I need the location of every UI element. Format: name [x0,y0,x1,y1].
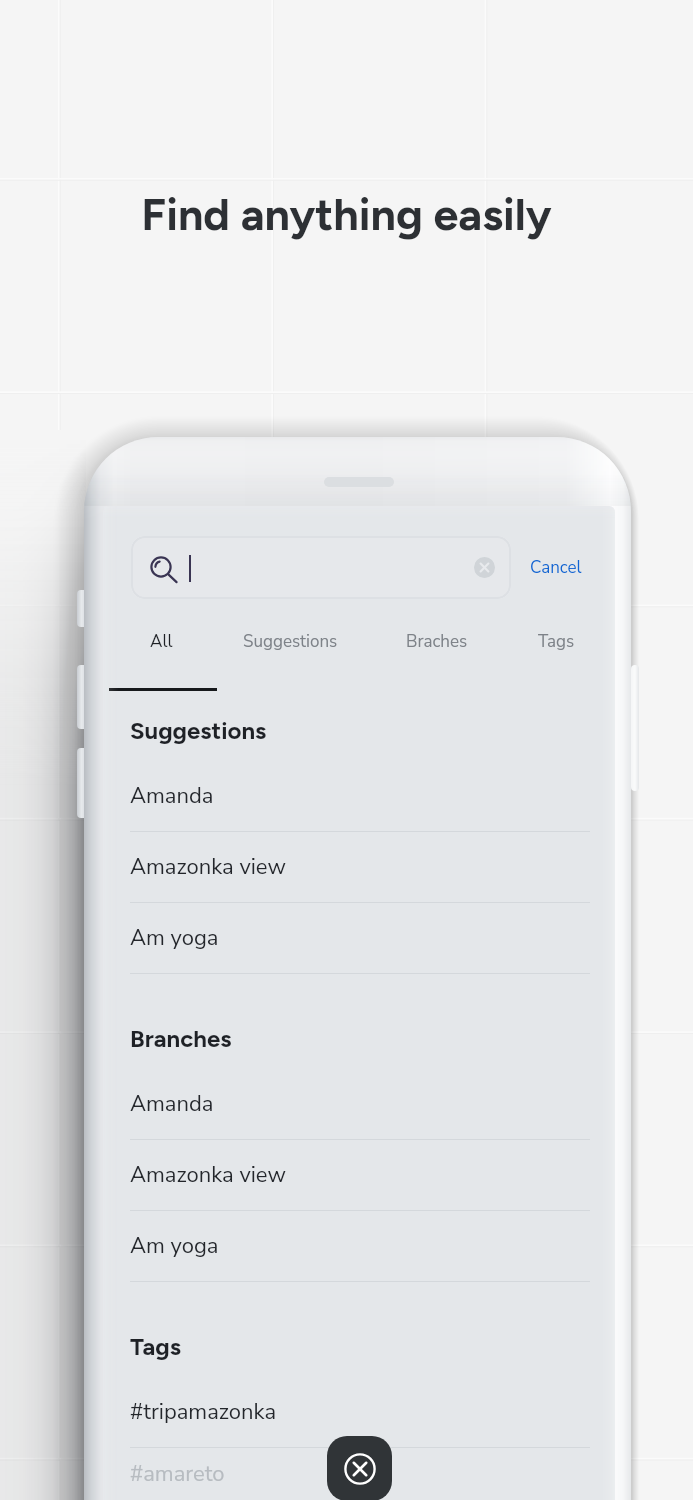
button[interactable]: Close [327,1436,392,1500]
staticText: Branches [130,1024,232,1053]
staticText: Find anything easily [0,187,693,241]
staticText: Tags [538,630,575,653]
button[interactable]: Amazonka view [103,1140,615,1211]
staticText: Amazonka view [130,852,286,882]
button[interactable]: Amanda [103,1069,615,1140]
staticText: #amareto [130,1459,225,1489]
staticText: Suggestions [130,716,267,745]
button[interactable]: All [103,610,225,672]
button[interactable]: Braches [373,610,501,672]
staticText: Am yoga [130,1231,219,1261]
staticText: Amazonka view [130,1160,286,1190]
button[interactable]: Tags [492,610,615,672]
button[interactable]: Cancel [530,536,615,599]
button[interactable]: Amanda [103,761,615,832]
button[interactable]: Amazonka view [103,832,615,903]
button[interactable]: Clear text [131,536,511,599]
staticText: All [150,630,173,653]
staticText: Amanda [130,1089,214,1119]
staticText: #tripamazonka [130,1397,277,1427]
button[interactable]: #amareto [130,1448,615,1500]
staticText: Cancel [530,556,582,579]
button[interactable]: Suggestions [226,610,354,672]
staticText: Tags [130,1332,181,1361]
staticText: Am yoga [130,923,219,953]
staticText: Suggestions [243,630,338,653]
button[interactable]: Am yoga [103,903,615,974]
button[interactable]: #tripamazonka [103,1377,615,1448]
button[interactable]: Clear text [474,557,495,578]
staticText: Amanda [130,781,214,811]
button[interactable]: Am yoga [103,1211,615,1282]
staticText: Braches [406,630,468,653]
